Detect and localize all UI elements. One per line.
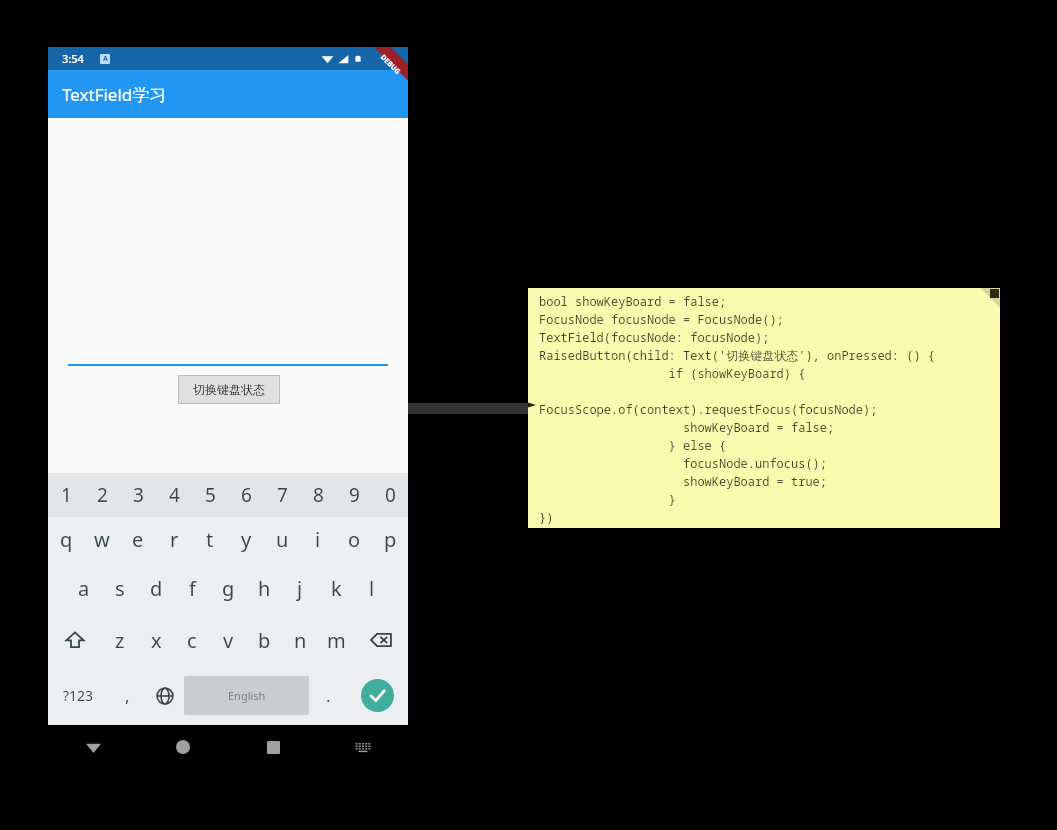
staticText: l: [369, 575, 375, 602]
button[interactable]: 8: [300, 473, 336, 517]
staticText: 7: [277, 482, 288, 508]
button[interactable]: Recents: [228, 727, 318, 767]
staticText: 6: [241, 482, 252, 508]
button[interactable]: 2: [84, 473, 120, 517]
staticText: showKeyBoard = false;: [539, 419, 835, 435]
button[interactable]: Back: [48, 727, 138, 767]
staticText: FocusNode focusNode = FocusNode();: [539, 311, 784, 327]
staticText: 3:54: [62, 51, 84, 66]
button[interactable]: i: [300, 517, 336, 562]
staticText: TextField学习: [62, 83, 167, 106]
staticText: u: [276, 526, 289, 553]
button[interactable]: n: [282, 614, 318, 666]
button[interactable]: k: [318, 562, 354, 614]
staticText: 8: [313, 482, 324, 508]
button[interactable]: Change language: [146, 666, 184, 725]
staticText: RaisedButton(child: Text('切换键盘状态'), onPr…: [539, 347, 936, 363]
staticText: ,: [125, 684, 130, 707]
staticText: e: [132, 526, 144, 553]
staticText: j: [297, 575, 303, 602]
button[interactable]: 4: [156, 473, 192, 517]
button[interactable]: 3: [120, 473, 156, 517]
staticText: r: [170, 526, 179, 553]
staticText: DEBUG: [378, 53, 403, 77]
staticText: p: [384, 526, 397, 553]
staticText: x: [151, 627, 162, 654]
button[interactable]: English: [184, 676, 309, 715]
staticText: 5: [205, 482, 216, 508]
button[interactable]: z: [102, 614, 138, 666]
button[interactable]: x: [138, 614, 174, 666]
button[interactable]: 5: [192, 473, 228, 517]
button[interactable]: 7: [264, 473, 300, 517]
staticText: FocusScope.of(context).requestFocus(focu…: [539, 401, 878, 417]
button[interactable]: 切换键盘状态: [179, 376, 279, 403]
button[interactable]: g: [210, 562, 246, 614]
staticText: focusNode.unfocus();: [539, 455, 828, 471]
staticText: z: [115, 627, 125, 654]
button[interactable]: w: [84, 517, 120, 562]
button[interactable]: b: [246, 614, 282, 666]
button[interactable]: r: [156, 517, 192, 562]
button[interactable]: Keyboard: [318, 727, 408, 767]
button[interactable]: s: [102, 562, 138, 614]
button[interactable]: Shift: [48, 614, 102, 666]
button[interactable]: e: [120, 517, 156, 562]
button[interactable]: 9: [336, 473, 372, 517]
staticText: TextField(focusNode: focusNode);: [539, 329, 770, 345]
staticText: if (showKeyBoard) {: [539, 365, 806, 381]
button[interactable]: l: [354, 562, 390, 614]
button[interactable]: .: [309, 666, 347, 725]
button[interactable]: a: [66, 562, 102, 614]
button[interactable]: q: [48, 517, 84, 562]
button[interactable]: v: [210, 614, 246, 666]
staticText: showKeyBoard = true;: [539, 473, 828, 489]
staticText: i: [315, 526, 321, 553]
staticText: m: [327, 627, 346, 654]
staticText: English: [228, 688, 266, 703]
button[interactable]: Enter: [361, 679, 394, 712]
staticText: 2: [97, 482, 108, 508]
button[interactable]: m: [318, 614, 354, 666]
button[interactable]: Home: [138, 727, 228, 767]
button[interactable]: o: [336, 517, 372, 562]
button[interactable]: u: [264, 517, 300, 562]
staticText: n: [294, 627, 307, 654]
button[interactable]: f: [174, 562, 210, 614]
button[interactable]: h: [246, 562, 282, 614]
staticText: 3: [133, 482, 144, 508]
staticText: 切换键盘状态: [193, 382, 265, 397]
button[interactable]: ?123: [48, 666, 108, 725]
staticText: 4: [169, 482, 180, 508]
staticText: v: [223, 627, 234, 654]
staticText: t: [206, 526, 214, 553]
staticText: b: [258, 627, 271, 654]
staticText: o: [348, 526, 361, 553]
staticText: 9: [349, 482, 360, 508]
button[interactable]: ,: [108, 666, 146, 725]
staticText: 0: [385, 482, 396, 508]
button[interactable]: Backspace: [354, 614, 408, 666]
button[interactable]: 6: [228, 473, 264, 517]
staticText: q: [60, 526, 73, 553]
staticText: 1: [61, 482, 72, 508]
button[interactable]: 0: [372, 473, 408, 517]
staticText: }): [539, 509, 554, 525]
staticText: a: [78, 575, 90, 602]
staticText: }: [539, 491, 676, 507]
staticText: k: [331, 575, 342, 602]
button[interactable]: j: [282, 562, 318, 614]
staticText: g: [222, 575, 235, 602]
staticText: f: [189, 575, 196, 602]
button[interactable]: p: [372, 517, 408, 562]
button[interactable]: d: [138, 562, 174, 614]
button[interactable]: y: [228, 517, 264, 562]
button[interactable]: t: [192, 517, 228, 562]
staticText: A: [103, 54, 108, 64]
button[interactable]: c: [174, 614, 210, 666]
staticText: y: [241, 526, 252, 553]
staticText: } else {: [539, 437, 727, 453]
button[interactable]: 1: [48, 473, 84, 517]
staticText: ?123: [63, 686, 94, 705]
